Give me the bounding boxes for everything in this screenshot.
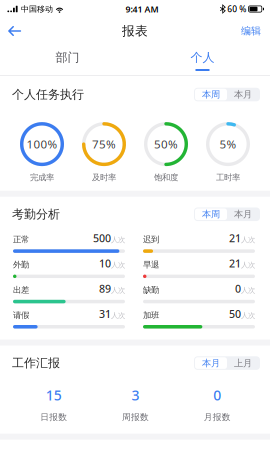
staticText: 及时率 — [92, 172, 116, 183]
staticText: 500 — [93, 231, 111, 245]
staticText: 日报数 — [40, 412, 67, 423]
button[interactable]: 本周 — [195, 89, 227, 100]
staticText: 本月 — [202, 357, 220, 369]
staticText: 15 — [46, 386, 62, 405]
staticText: 人次 — [111, 311, 125, 320]
button[interactable]: 返回 — [0, 18, 31, 43]
staticText: 人次 — [241, 286, 255, 295]
staticText: 编辑 — [241, 25, 261, 37]
staticText: 部门 — [55, 50, 79, 65]
staticText: 工时率 — [216, 172, 240, 183]
staticText: 正常 — [13, 234, 29, 245]
staticText: 外勤 — [13, 259, 29, 270]
staticText: 31 — [99, 306, 111, 321]
staticText: 21 — [229, 256, 241, 270]
staticText: 0 — [213, 386, 221, 405]
staticText: 考勤分析 — [12, 207, 60, 222]
staticText: 月报数 — [204, 412, 231, 423]
staticText: 本周 — [202, 208, 220, 220]
staticText: 加班 — [143, 310, 159, 320]
button[interactable]: 部门 — [0, 44, 135, 76]
staticText: 21 — [229, 231, 241, 245]
staticText: 中国移动 — [19, 4, 55, 14]
staticText: 上月 — [234, 357, 252, 369]
staticText: 89 — [99, 281, 111, 296]
staticText: 完成率 — [30, 172, 54, 183]
button[interactable]: 本月 — [227, 89, 259, 100]
staticText: 早退 — [143, 259, 159, 270]
button[interactable]: 上月 — [227, 357, 259, 369]
staticText: 个人 — [190, 50, 214, 65]
button[interactable]: 个人 — [135, 44, 270, 76]
staticText: 10 — [99, 256, 111, 270]
staticText: 75% — [92, 136, 116, 152]
staticText: 100% — [26, 136, 57, 152]
staticText: 工作汇报 — [12, 355, 60, 371]
button[interactable]: 本月 — [227, 208, 259, 220]
staticText: 本月 — [234, 208, 252, 220]
button[interactable]: 本月 — [195, 357, 227, 369]
staticText: 60 % — [225, 3, 248, 15]
staticText: 人次 — [111, 286, 125, 295]
staticText: 本周 — [202, 89, 220, 100]
staticText: 迟到 — [143, 234, 159, 245]
staticText: 人次 — [241, 311, 255, 320]
staticText: 出差 — [13, 285, 29, 295]
staticText: 3 — [131, 386, 139, 405]
staticText: 本月 — [234, 89, 252, 100]
staticText: 周报数 — [122, 412, 149, 423]
staticText: 50 — [229, 306, 241, 321]
staticText: 饱和度 — [154, 172, 178, 183]
staticText: 人次 — [111, 260, 125, 270]
staticText: 人次 — [241, 260, 255, 270]
staticText: 请假 — [13, 310, 29, 320]
staticText: 9:41 AM — [126, 3, 159, 15]
staticText: 50% — [154, 136, 178, 152]
staticText: 缺勤 — [143, 285, 159, 295]
staticText: 人次 — [241, 235, 255, 244]
button[interactable]: 编辑 — [232, 18, 270, 44]
button[interactable]: 本周 — [195, 208, 227, 220]
staticText: 人次 — [111, 235, 125, 244]
staticText: 5% — [219, 136, 236, 152]
staticText: 个人任务执行 — [12, 87, 84, 102]
staticText: 报表 — [122, 23, 148, 39]
staticText: 0 — [235, 281, 241, 296]
